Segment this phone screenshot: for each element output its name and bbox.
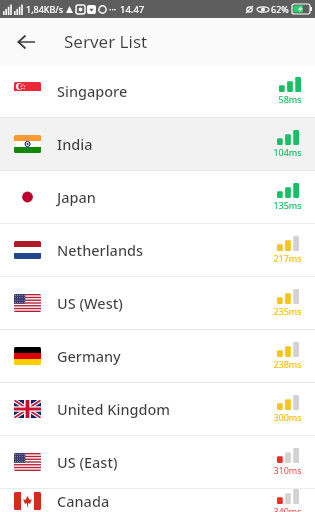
staticText: United Kingdom [57,399,171,419]
staticText: 135ms [273,199,302,211]
button[interactable]: Back [8,24,44,60]
staticText: 310ms [273,464,302,476]
button[interactable]: US (East) [0,436,315,488]
staticText: US (East) [57,452,118,472]
staticText: 58ms [278,93,302,105]
staticText: 14.47 [120,3,145,16]
staticText: Netherlands [57,240,144,260]
button[interactable]: US (West) [0,277,315,329]
staticText: 300ms [273,411,302,423]
staticText: Japan [57,187,96,207]
staticText: 340ms [273,505,302,512]
button[interactable]: India [0,118,315,170]
staticText: India [57,134,93,154]
button[interactable]: Japan [0,171,315,223]
staticText: Server List [64,30,148,53]
staticText: 1,84KB/s [26,3,63,15]
staticText: Germany [57,346,121,366]
staticText: 238ms [273,358,302,370]
staticText: 104ms [273,146,302,158]
staticText: 235ms [273,305,302,317]
button[interactable]: Singapore [0,65,315,117]
button[interactable]: Germany [0,330,315,382]
staticText: ··· [109,3,117,15]
staticText: Canada [57,491,110,511]
staticText: 62% [271,3,289,15]
staticText: 217ms [273,252,302,264]
staticText: Singapore [57,81,128,101]
button[interactable]: Netherlands [0,224,315,276]
button[interactable]: Canada [0,489,315,512]
staticText: US (West) [57,293,123,313]
button[interactable]: United Kingdom [0,383,315,435]
